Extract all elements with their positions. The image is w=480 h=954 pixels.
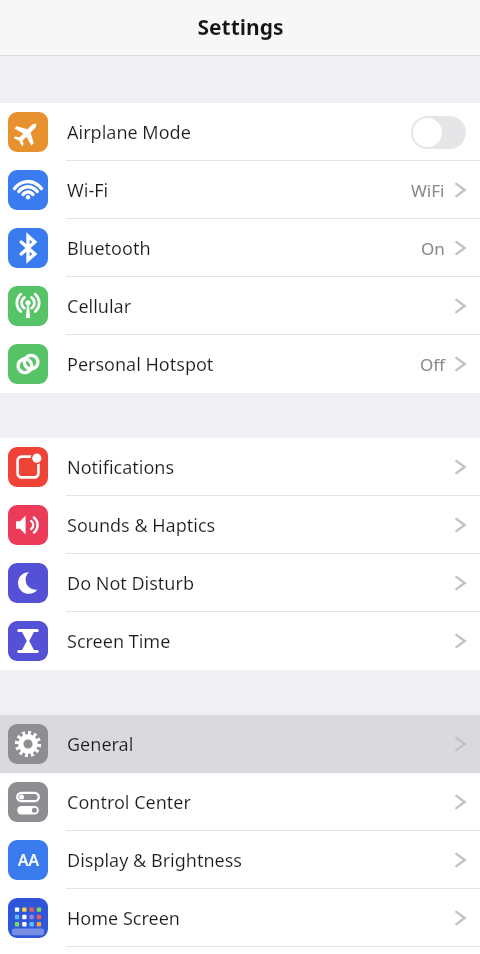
staticText: Airplane Mode bbox=[67, 120, 411, 145]
staticText: General bbox=[67, 732, 455, 757]
staticText: Personal Hotspot bbox=[67, 352, 420, 377]
button[interactable]: Cellular bbox=[0, 277, 480, 335]
button[interactable]: Notifications bbox=[0, 438, 480, 496]
staticText: WiFi bbox=[411, 179, 445, 202]
staticText: Cellular bbox=[67, 294, 455, 319]
button[interactable]: Wi-Fi bbox=[0, 161, 480, 219]
staticText: Display & Brightness bbox=[67, 848, 455, 873]
staticText: Control Center bbox=[67, 790, 455, 815]
button[interactable]: Bluetooth bbox=[0, 219, 480, 277]
staticText: Do Not Disturb bbox=[67, 571, 455, 596]
button[interactable]: Control Center bbox=[0, 773, 480, 831]
button[interactable]: Home Screen bbox=[0, 889, 480, 947]
staticText: Sounds & Haptics bbox=[67, 513, 455, 538]
button[interactable]: AA bbox=[0, 831, 480, 889]
staticText: On bbox=[421, 237, 445, 260]
staticText: Settings bbox=[197, 13, 284, 42]
staticText: Wi-Fi bbox=[67, 178, 411, 203]
button[interactable]: Airplane Mode toggle bbox=[411, 116, 466, 149]
staticText: AA bbox=[18, 849, 39, 871]
button[interactable]: Sounds & Haptics bbox=[0, 496, 480, 554]
button[interactable]: Airplane Mode bbox=[0, 103, 480, 161]
staticText: Home Screen bbox=[67, 906, 455, 931]
button[interactable]: Personal Hotspot bbox=[0, 335, 480, 393]
staticText: Bluetooth bbox=[67, 236, 421, 261]
button[interactable]: Do Not Disturb bbox=[0, 554, 480, 612]
staticText: Screen Time bbox=[67, 629, 455, 654]
staticText: Off bbox=[420, 353, 445, 376]
button[interactable]: General bbox=[0, 715, 480, 773]
staticText: Notifications bbox=[67, 455, 455, 480]
button[interactable]: Screen Time bbox=[0, 612, 480, 670]
